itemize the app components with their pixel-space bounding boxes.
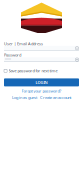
staticText: Save password for next time xyxy=(9,68,58,73)
button[interactable]: Show password xyxy=(75,58,79,62)
staticText: Log in as guest xyxy=(12,95,37,100)
staticText: Forgot your password? xyxy=(21,88,61,93)
button[interactable]: Create an account xyxy=(40,95,71,100)
button[interactable]: Email info xyxy=(75,46,79,50)
staticText: LOGIN xyxy=(35,80,47,85)
button[interactable]: Save password for next time xyxy=(4,69,79,73)
button[interactable]: Log in as guest xyxy=(12,95,37,100)
staticText: Password xyxy=(4,52,21,58)
staticText: Create an account xyxy=(40,95,71,100)
staticText: User | Email Address xyxy=(4,41,43,46)
button[interactable]: Forgot your password? xyxy=(4,88,79,93)
staticText: •••••• xyxy=(5,58,11,61)
button[interactable]: LOGIN xyxy=(4,78,79,86)
